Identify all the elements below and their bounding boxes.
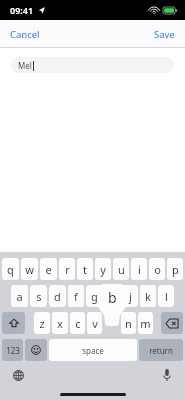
button[interactable]: y — [95, 258, 111, 280]
button[interactable]: c — [70, 312, 85, 334]
button[interactable]: g — [86, 285, 102, 307]
staticText: i — [138, 262, 141, 277]
button[interactable]: Cancel — [4, 24, 46, 45]
staticText: e — [45, 262, 52, 277]
button[interactable]: Delete — [161, 312, 183, 334]
staticText: p — [172, 262, 179, 277]
button[interactable]: s — [30, 285, 47, 307]
staticText: Mel — [18, 60, 32, 71]
button[interactable]: f — [68, 285, 84, 307]
staticText: d — [54, 289, 61, 304]
staticText: Cancel — [10, 28, 40, 41]
staticText: y — [100, 262, 106, 277]
button[interactable]: Save — [148, 24, 181, 45]
button[interactable]: Emoji — [25, 339, 47, 361]
staticText: 123 — [6, 345, 20, 356]
button[interactable]: m — [138, 312, 153, 334]
staticText: g — [91, 289, 98, 304]
button[interactable]: p — [167, 258, 183, 280]
staticText: space — [82, 345, 104, 356]
staticText: v — [92, 316, 98, 331]
button[interactable]: n — [121, 312, 136, 334]
staticText: z — [39, 316, 45, 331]
button[interactable]: Mel — [11, 57, 174, 73]
button[interactable]: t — [77, 258, 93, 280]
staticText: q — [7, 262, 14, 277]
button[interactable]: z — [34, 312, 50, 334]
button[interactable]: j — [122, 285, 138, 307]
button[interactable]: x — [52, 312, 68, 334]
staticText: r — [65, 262, 70, 277]
button[interactable]: Dictate — [157, 365, 177, 385]
button[interactable]: r — [59, 258, 75, 280]
button[interactable]: q — [2, 258, 19, 280]
staticText: w — [25, 262, 34, 277]
button[interactable]: i — [131, 258, 147, 280]
button[interactable]: space — [49, 339, 137, 361]
button[interactable]: k — [140, 285, 156, 307]
staticText: l — [165, 289, 168, 304]
staticText: b — [108, 288, 117, 307]
button[interactable]: o — [149, 258, 165, 280]
button[interactable]: d — [49, 285, 66, 307]
staticText: j — [129, 289, 132, 304]
staticText: t — [83, 262, 87, 277]
staticText: Save — [154, 28, 175, 41]
staticText: n — [125, 316, 132, 331]
staticText: u — [118, 262, 125, 277]
button[interactable]: Change keyboard — [8, 365, 28, 385]
staticText: f — [74, 289, 78, 304]
button[interactable]: 123 — [2, 339, 23, 361]
button[interactable]: w — [21, 258, 38, 280]
staticText: return — [149, 345, 173, 356]
button[interactable]: Shift — [2, 312, 25, 334]
staticText: c — [75, 316, 81, 331]
staticText: h — [109, 289, 116, 304]
staticText: s — [36, 289, 42, 304]
staticText: 09:41 — [10, 4, 34, 16]
staticText: o — [154, 262, 161, 277]
button[interactable]: a — [11, 285, 28, 307]
staticText: k — [145, 289, 151, 304]
button[interactable]: h — [104, 285, 120, 307]
staticText: m — [140, 316, 151, 331]
button[interactable]: u — [113, 258, 129, 280]
staticText: a — [16, 289, 23, 304]
button[interactable]: l — [158, 285, 174, 307]
button[interactable]: v — [87, 312, 102, 334]
staticText: x — [57, 316, 63, 331]
button[interactable]: return — [139, 339, 183, 361]
button[interactable]: e — [40, 258, 57, 280]
